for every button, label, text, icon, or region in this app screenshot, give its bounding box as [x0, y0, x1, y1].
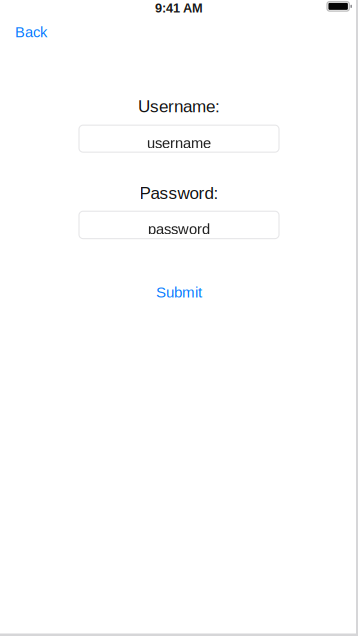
staticText: 9:41 AM: [155, 1, 203, 15]
staticText: Back: [15, 24, 47, 40]
button[interactable]: password: [79, 211, 279, 239]
staticText: Submit: [156, 284, 202, 301]
button[interactable]: Submit: [146, 284, 212, 301]
staticText: username: [147, 135, 211, 151]
staticText: Password:: [139, 184, 218, 203]
button[interactable]: Back: [0, 24, 59, 40]
staticText: Username:: [138, 97, 220, 116]
button[interactable]: username: [79, 125, 279, 152]
staticText: password: [148, 221, 210, 237]
